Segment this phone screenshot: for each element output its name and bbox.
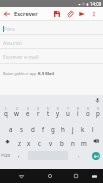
button[interactable]: 9 (83, 106, 93, 120)
button[interactable]: Back (0, 7, 13, 21)
button[interactable]: Escrever e-mail (0, 49, 103, 64)
button[interactable]: f (38, 120, 48, 134)
staticText: 8 (77, 107, 79, 111)
button[interactable]: Recents (70, 169, 82, 183)
staticText: 4 (37, 107, 39, 111)
staticText: t (47, 109, 50, 117)
button[interactable]: 8 (73, 106, 83, 120)
staticText: q (4, 109, 8, 117)
button[interactable]: Home (44, 169, 56, 183)
staticText: Escrever (14, 10, 38, 18)
button[interactable]: x (24, 134, 34, 148)
staticText: Para (4, 26, 15, 33)
button[interactable]: Assunto (0, 35, 103, 49)
staticText: h (61, 125, 65, 133)
staticText: 3 (27, 107, 29, 111)
button[interactable]: 7 (63, 106, 73, 120)
button[interactable]: K-9 Mail (38, 71, 54, 76)
button[interactable]: g (48, 120, 58, 134)
staticText: ?123 (1, 153, 11, 159)
staticText: l (92, 125, 94, 133)
button[interactable]: z (14, 134, 24, 148)
staticText: Escrever e-mail (3, 54, 39, 61)
button[interactable]: Switch keyboard (88, 169, 100, 183)
button[interactable]: Send (88, 148, 103, 163)
button[interactable]: Attach file (63, 7, 76, 21)
button[interactable]: s (16, 120, 27, 134)
button[interactable]: m (78, 134, 89, 148)
button[interactable]: 6 (53, 106, 63, 120)
button[interactable]: 1 (0, 106, 11, 120)
button[interactable]: c (34, 134, 45, 148)
button[interactable]: More options (88, 7, 100, 21)
staticText: r (37, 109, 40, 117)
button[interactable]: Save draft (51, 7, 63, 21)
staticText: w (14, 109, 19, 117)
staticText: b (60, 139, 64, 147)
staticText: a (9, 125, 13, 133)
button[interactable]: k (78, 120, 88, 134)
staticText: 6 (57, 107, 59, 111)
button[interactable]: Voice input (91, 95, 103, 106)
staticText: d (31, 125, 35, 133)
button[interactable]: h (58, 120, 68, 134)
staticText: 0 (97, 107, 99, 111)
staticText: 5 (47, 107, 49, 111)
button[interactable]: Back (15, 169, 27, 183)
button[interactable]: v (45, 134, 56, 148)
staticText: y (56, 109, 60, 117)
button[interactable]: j (68, 120, 78, 134)
button[interactable]: 5 (43, 106, 53, 120)
staticText: c (38, 139, 41, 147)
staticText: o (86, 109, 90, 117)
button[interactable]: l (88, 120, 98, 134)
staticText: s (20, 125, 23, 133)
staticText: Assunto (3, 40, 22, 47)
button[interactable]: Backspace (89, 134, 103, 148)
staticText: e (26, 109, 30, 117)
staticText: u (66, 109, 70, 117)
button[interactable]: d (27, 120, 38, 134)
button[interactable]: Shift (0, 134, 14, 148)
button[interactable]: , (12, 148, 26, 163)
staticText: k (81, 125, 85, 133)
button[interactable]: Send (76, 7, 88, 21)
staticText: m (81, 139, 87, 147)
staticText: v (49, 139, 53, 147)
button[interactable]: 0 (93, 106, 103, 120)
staticText: 1 (5, 107, 7, 111)
staticText: 7 (67, 107, 69, 111)
staticText: z (18, 139, 21, 147)
staticText: 2 (16, 107, 18, 111)
staticText: i (77, 109, 79, 117)
button[interactable]: ?123 (0, 148, 12, 163)
button[interactable]: . (70, 148, 88, 163)
button[interactable]: 2 (11, 106, 22, 120)
staticText: j (72, 125, 74, 133)
staticText: 9 (87, 107, 89, 111)
staticText: , (18, 151, 20, 159)
staticText: p (96, 109, 100, 117)
staticText: f (42, 125, 45, 133)
button[interactable]: Para (0, 21, 103, 35)
staticText: Baixe grátis o app (3, 71, 38, 76)
button[interactable]: 3 (22, 106, 33, 120)
staticText: n (71, 139, 75, 147)
staticText: g (51, 125, 55, 133)
button[interactable]: n (67, 134, 78, 148)
staticText: 14:09 (90, 1, 102, 7)
button[interactable]: 4 (33, 106, 43, 120)
button[interactable]: b (56, 134, 67, 148)
button[interactable]: a (5, 120, 16, 134)
staticText: . (78, 151, 80, 159)
staticText: x (27, 139, 31, 147)
